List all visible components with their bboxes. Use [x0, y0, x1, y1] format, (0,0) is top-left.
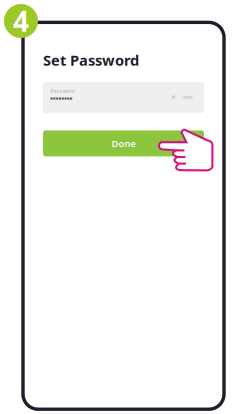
staticText: Set Password	[43, 50, 139, 70]
button[interactable]: Password	[43, 82, 204, 113]
staticText: Done	[111, 137, 135, 150]
staticText: Password	[50, 87, 74, 95]
button[interactable]: Done	[43, 130, 204, 156]
staticText: 4	[13, 2, 29, 40]
